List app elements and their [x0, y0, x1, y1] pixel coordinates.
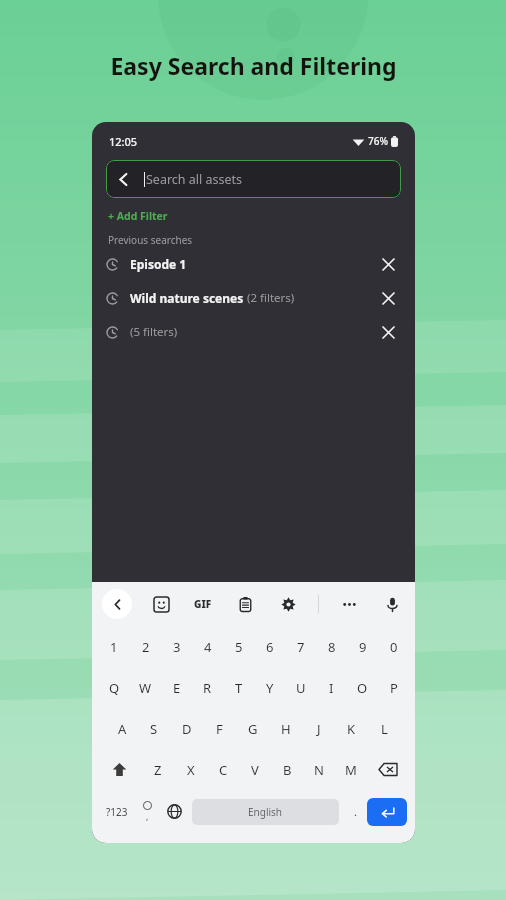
button[interactable]: More options	[336, 591, 362, 617]
button[interactable]: P	[378, 667, 409, 708]
button[interactable]: V	[239, 749, 271, 790]
button[interactable]: F	[203, 708, 236, 749]
button[interactable]: Back	[106, 160, 401, 198]
staticText: 4	[204, 638, 212, 656]
button[interactable]: Enter	[367, 798, 407, 826]
button[interactable]: Shift	[98, 749, 141, 790]
staticText: E	[173, 679, 181, 697]
button[interactable]: Y	[254, 667, 285, 708]
button[interactable]: U	[285, 667, 316, 708]
button[interactable]: Remove search	[375, 319, 401, 345]
button[interactable]: Remove search	[375, 251, 401, 277]
staticText: A	[118, 720, 127, 738]
staticText: M	[345, 761, 357, 779]
button[interactable]: .	[343, 790, 367, 833]
staticText: O	[357, 679, 368, 697]
button[interactable]: English	[192, 799, 339, 825]
staticText: ?123	[106, 805, 128, 819]
button[interactable]: Remove search	[375, 285, 401, 311]
staticText: P	[390, 679, 398, 697]
staticText: T	[235, 679, 243, 697]
button[interactable]: Q	[98, 667, 130, 708]
button[interactable]: 6	[254, 626, 285, 667]
button[interactable]: H	[269, 708, 302, 749]
staticText: 12:05	[109, 134, 138, 149]
staticText: Episode 1	[130, 256, 187, 272]
button[interactable]: Voice input	[379, 591, 405, 617]
staticText: B	[283, 761, 292, 779]
button[interactable]: E	[161, 667, 192, 708]
button[interactable]: Episode 1	[92, 247, 415, 281]
staticText: 1	[110, 638, 118, 656]
button[interactable]: Clipboard	[232, 591, 258, 617]
staticText: 5	[235, 638, 243, 656]
staticText: Wild nature scenes	[130, 290, 244, 306]
staticText: X	[187, 761, 195, 779]
staticText: 2	[142, 638, 150, 656]
button[interactable]: K	[335, 708, 368, 749]
button[interactable]: R	[192, 667, 223, 708]
staticText: 3	[173, 638, 181, 656]
button[interactable]: (5 filters)	[92, 315, 415, 349]
staticText: 6	[266, 638, 274, 656]
button[interactable]: + Add Filter	[106, 207, 170, 225]
button[interactable]: A	[106, 708, 138, 749]
button[interactable]: 7	[285, 626, 316, 667]
staticText: 7	[297, 638, 305, 656]
staticText: 0	[390, 638, 398, 656]
button[interactable]: 0	[378, 626, 409, 667]
staticText: ,	[146, 810, 149, 822]
button[interactable]: Settings	[275, 591, 301, 617]
button[interactable]: 9	[347, 626, 378, 667]
button[interactable]: D	[170, 708, 203, 749]
button[interactable]: ?123	[100, 790, 134, 833]
button[interactable]: 1	[98, 626, 130, 667]
button[interactable]: L	[368, 708, 401, 749]
staticText: + Add Filter	[108, 209, 168, 223]
button[interactable]: X	[174, 749, 207, 790]
button[interactable]: S	[138, 708, 170, 749]
staticText: 9	[359, 638, 367, 656]
button[interactable]: Back	[106, 162, 140, 196]
button[interactable]: Backspace	[367, 749, 409, 790]
staticText: English	[248, 805, 283, 819]
button[interactable]: 2	[130, 626, 161, 667]
button[interactable]: G	[236, 708, 269, 749]
staticText: F	[216, 720, 223, 738]
button[interactable]: O	[347, 667, 378, 708]
button[interactable]: Back	[102, 589, 132, 619]
staticText: J	[317, 720, 321, 738]
staticText: Z	[154, 761, 162, 779]
button[interactable]: Wild nature scenes	[92, 281, 415, 315]
button[interactable]: W	[130, 667, 161, 708]
staticText: L	[381, 720, 388, 738]
button[interactable]: GIF	[190, 593, 216, 615]
button[interactable]: B	[271, 749, 303, 790]
button[interactable]: 4	[192, 626, 223, 667]
button[interactable]: T	[223, 667, 254, 708]
staticText: K	[347, 720, 356, 738]
staticText: Y	[266, 679, 274, 697]
staticText: Search all assets	[146, 171, 243, 188]
button[interactable]: Stickers	[148, 591, 174, 617]
button[interactable]: I	[316, 667, 347, 708]
staticText: G	[248, 720, 258, 738]
staticText: D	[182, 720, 192, 738]
button[interactable]: Emoji	[134, 790, 160, 833]
staticText: 8	[328, 638, 336, 656]
staticText: C	[219, 761, 228, 779]
button[interactable]: C	[207, 749, 239, 790]
button[interactable]: J	[302, 708, 335, 749]
button[interactable]: Z	[141, 749, 174, 790]
button[interactable]: 5	[223, 626, 254, 667]
button[interactable]: M	[335, 749, 367, 790]
staticText: Q	[109, 679, 120, 697]
staticText: H	[281, 720, 291, 738]
staticText: Easy Search and Filtering	[110, 50, 397, 81]
button[interactable]: N	[303, 749, 335, 790]
staticText: (2 filters)	[244, 290, 295, 306]
button[interactable]: 3	[161, 626, 192, 667]
button[interactable]: Change language	[160, 790, 188, 833]
staticText: S	[150, 720, 158, 738]
button[interactable]: 8	[316, 626, 347, 667]
